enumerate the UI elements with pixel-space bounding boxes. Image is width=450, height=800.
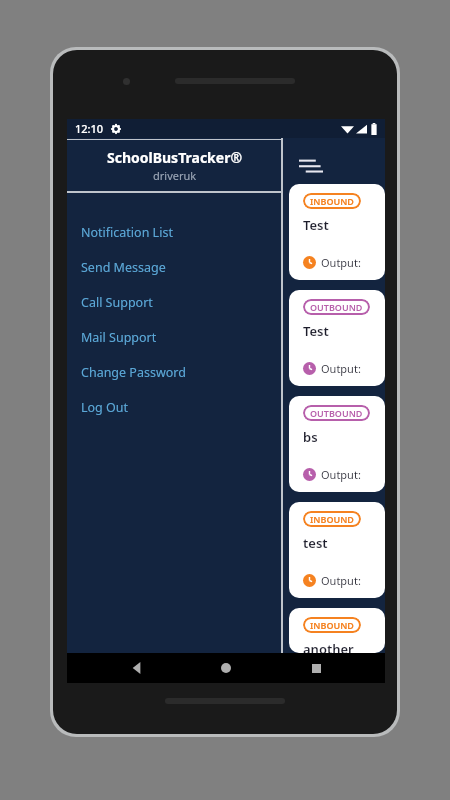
button[interactable]: Log Out	[67, 390, 283, 425]
button[interactable]: Back	[117, 653, 157, 683]
staticText: OUTBOUND	[310, 301, 363, 313]
staticText: Test inbound notification	[303, 216, 377, 234]
staticText: OUTBOUND	[310, 407, 363, 419]
staticText: Send Message	[81, 259, 166, 276]
staticText: INBOUND	[310, 619, 354, 631]
staticText: Mail Support	[81, 329, 157, 346]
staticText: INBOUND	[310, 195, 354, 207]
staticText: driveruk	[153, 168, 197, 183]
button[interactable]: Send Message	[67, 250, 283, 285]
button[interactable]: INBOUND	[289, 184, 385, 280]
staticText: SchoolBusTracker®	[107, 148, 243, 167]
staticText: Output: 12:00	[321, 361, 377, 376]
button[interactable]: Change Password	[67, 355, 283, 390]
button[interactable]: Recent apps	[296, 653, 336, 683]
button[interactable]: OUTBOUND	[289, 396, 385, 492]
button[interactable]: OUTBOUND	[289, 290, 385, 386]
button[interactable]: Open navigation menu	[293, 148, 329, 184]
button[interactable]: Mail Support	[67, 320, 283, 355]
button[interactable]: INBOUND	[289, 502, 385, 598]
staticText: 12:10	[75, 121, 104, 136]
button[interactable]: INBOUND	[289, 608, 385, 653]
button[interactable]: Notification List	[67, 215, 283, 250]
button[interactable]: Home	[206, 653, 246, 683]
staticText: Output: 12:00	[321, 573, 377, 588]
staticText: Call Support	[81, 294, 153, 311]
staticText: bs	[303, 428, 318, 446]
staticText: Log Out	[81, 399, 129, 416]
staticText: test	[303, 534, 328, 552]
staticText: Output: 12:00	[321, 255, 377, 270]
staticText: Test outbound notification	[303, 322, 377, 340]
staticText: another	[303, 640, 354, 653]
staticText: INBOUND	[310, 513, 354, 525]
staticText: Notification List	[81, 224, 173, 241]
button[interactable]: Call Support	[67, 285, 283, 320]
staticText: Change Password	[81, 364, 186, 381]
staticText: Output: 12:00	[321, 467, 377, 482]
